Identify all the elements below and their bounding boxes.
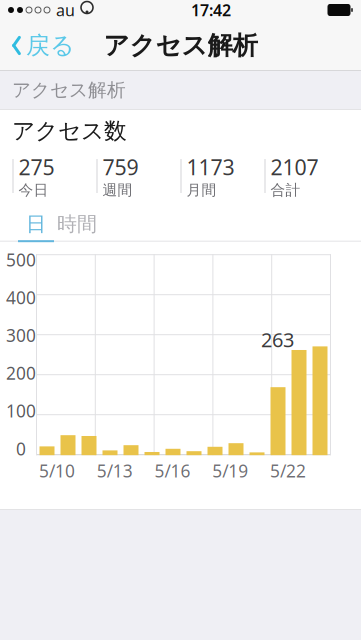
staticText: 275 — [18, 153, 54, 181]
staticText: 759 — [102, 153, 138, 181]
staticText: 200 — [6, 362, 36, 385]
staticText: アクセス解析 — [12, 78, 126, 101]
staticText: アクセス数 — [12, 117, 127, 145]
staticText: 戻る — [26, 31, 75, 60]
staticText: 合計 — [270, 181, 300, 199]
staticText: au — [56, 0, 75, 21]
staticText: 日 — [26, 212, 46, 236]
staticText: 5/19 — [212, 459, 248, 482]
staticText: 100 — [6, 399, 36, 422]
staticText: 5/10 — [39, 459, 75, 482]
button[interactable]: 日 — [18, 213, 54, 235]
staticText: 月間 — [186, 181, 216, 199]
staticText: 300 — [6, 324, 36, 347]
staticText: 0 — [16, 437, 26, 460]
staticText: 17:42 — [191, 0, 231, 21]
staticText: アクセス解析 — [103, 30, 257, 61]
button[interactable]: 時間 — [54, 213, 100, 235]
staticText: 5/13 — [97, 459, 133, 482]
button[interactable]: 戻る — [0, 23, 75, 68]
staticText: 400 — [6, 286, 36, 309]
staticText: 時間 — [57, 212, 97, 236]
staticText: 今日 — [18, 181, 48, 199]
staticText: 500 — [6, 248, 36, 271]
staticText: 1173 — [186, 153, 234, 181]
staticText: 週間 — [102, 181, 132, 199]
staticText: 2107 — [270, 153, 318, 181]
staticText: 5/22 — [270, 459, 306, 482]
staticText: 263 — [261, 326, 294, 353]
staticText: 5/16 — [154, 459, 190, 482]
